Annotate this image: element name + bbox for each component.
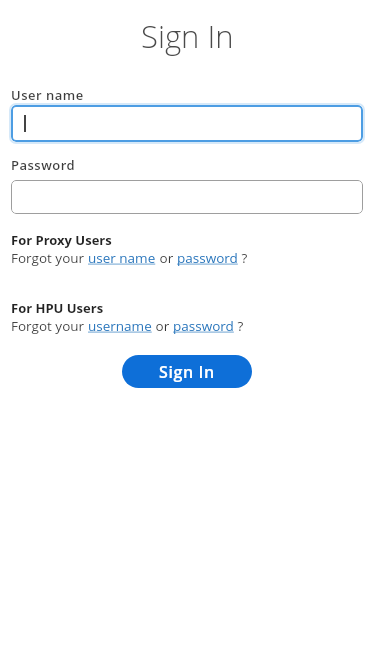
button[interactable]: user name [88,249,156,267]
button[interactable] [11,105,363,142]
staticText: or [152,317,173,335]
staticText: ? [238,249,248,267]
staticText: Forgot your [11,317,88,335]
staticText: Sign In [141,15,234,57]
staticText: or [156,249,177,267]
button[interactable]: Sign In [122,355,252,388]
staticText: ? [234,317,244,335]
button[interactable] [11,180,363,214]
staticText: For Proxy Users [11,231,112,249]
staticText: For HPU Users [11,299,104,317]
staticText: Sign In [159,361,215,383]
button[interactable]: password [173,317,234,335]
staticText: Password [11,156,76,174]
staticText: User name [11,86,84,104]
button[interactable]: password [177,249,238,267]
button[interactable]: username [88,317,152,335]
staticText: Forgot your [11,249,88,267]
